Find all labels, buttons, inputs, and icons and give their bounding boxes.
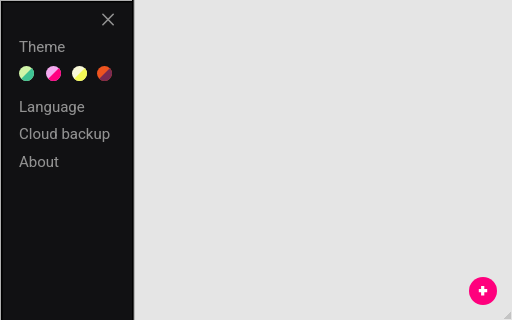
button[interactable]: Cloud backup <box>0 125 132 151</box>
button[interactable]: Green theme <box>19 66 34 81</box>
button[interactable]: About <box>0 153 132 179</box>
button[interactable]: Language <box>0 98 132 124</box>
staticText: Theme <box>19 38 66 56</box>
button[interactable]: Add <box>469 277 497 305</box>
button[interactable]: Orange theme <box>97 66 112 81</box>
staticText: Cloud backup <box>19 125 111 143</box>
button[interactable]: Yellow theme <box>72 66 87 81</box>
button[interactable]: Pink theme <box>46 66 61 81</box>
button[interactable]: Close <box>94 6 121 33</box>
staticText: About <box>19 153 59 171</box>
staticText: Language <box>19 98 85 116</box>
button[interactable]: Theme <box>0 38 132 64</box>
